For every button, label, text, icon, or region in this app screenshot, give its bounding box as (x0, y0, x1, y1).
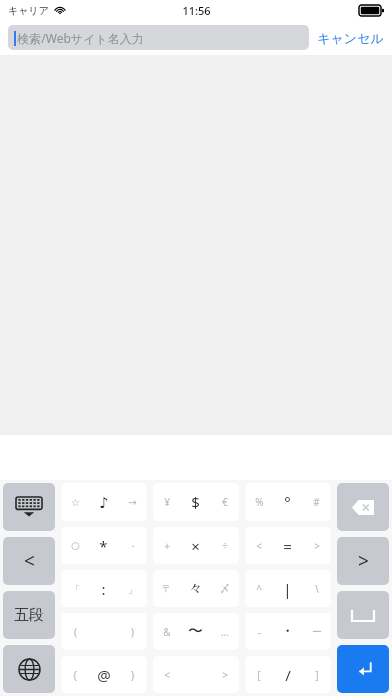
staticText: = (283, 536, 292, 556)
button[interactable]: + (153, 527, 239, 564)
button[interactable]: ☆ (61, 483, 147, 521)
staticText: % (255, 495, 264, 509)
staticText: キャリア (8, 4, 49, 17)
staticText: 「 (70, 583, 80, 596)
staticText: 〆 (220, 582, 230, 595)
staticText: / (285, 665, 291, 685)
staticText: ] (315, 668, 319, 682)
staticText: > (358, 548, 369, 574)
staticText: \ (315, 582, 319, 596)
staticText: | (283, 579, 292, 599)
staticText: 」 (128, 583, 138, 596)
button[interactable]: Hide keyboard (3, 483, 55, 531)
button[interactable]: & (153, 613, 239, 650)
staticText: ☆ (71, 497, 80, 509)
staticText: : (101, 579, 106, 599)
staticText: ) (131, 625, 134, 639)
button[interactable]: ○ (61, 527, 147, 564)
staticText: € (222, 495, 228, 509)
staticText: ♪ (99, 494, 109, 511)
button[interactable]: - (245, 613, 331, 650)
staticText: } (131, 668, 135, 682)
staticText: < (256, 539, 262, 553)
staticText: > (222, 668, 228, 682)
staticText: ・ (128, 540, 138, 553)
button[interactable]: キャンセル (317, 30, 384, 46)
button[interactable]: 〒 (153, 570, 239, 607)
staticText: - (257, 625, 261, 639)
staticText: $ (191, 492, 200, 512)
staticText: ・ (280, 622, 295, 641)
staticText: > (314, 539, 320, 553)
staticText: 検索/Webサイト名入力 (17, 30, 144, 46)
button[interactable]: { (61, 656, 147, 693)
staticText: 11:56 (182, 3, 211, 18)
button[interactable]: Space (337, 591, 389, 639)
staticText: + (164, 539, 170, 553)
staticText: # (313, 495, 320, 509)
button[interactable]: Previous (3, 537, 55, 585)
staticText: * (99, 536, 108, 556)
button[interactable]: ^ (245, 570, 331, 607)
staticText: … (221, 625, 229, 639)
button[interactable]: ¥ (153, 483, 239, 521)
staticText: 五段 (14, 606, 44, 625)
button[interactable]: < (245, 527, 331, 564)
staticText: ° (284, 492, 291, 512)
button[interactable]: [ (245, 656, 331, 693)
button[interactable]: Change language (3, 645, 55, 693)
staticText: × (191, 536, 200, 556)
staticText: [ (257, 668, 261, 682)
staticText: ^ (256, 582, 262, 596)
staticText: 〒 (162, 582, 172, 595)
staticText: < (164, 668, 170, 682)
staticText: 〜 (188, 622, 203, 641)
button[interactable]: ( (61, 613, 147, 650)
staticText: ○ (71, 540, 80, 552)
staticText: < (24, 548, 35, 574)
button[interactable]: 検索/Webサイト名入力 (8, 25, 309, 50)
button[interactable]: Godan keyboard (3, 591, 55, 639)
button[interactable]: Delete (337, 483, 389, 531)
staticText: ÷ (222, 539, 228, 553)
staticText: ¥ (164, 495, 170, 509)
button[interactable]: < (153, 656, 239, 693)
button[interactable]: Next (337, 537, 389, 585)
staticText: 々 (188, 579, 203, 598)
button[interactable]: 「 (61, 570, 147, 607)
staticText: ( (74, 625, 77, 639)
staticText: & (163, 625, 171, 639)
button[interactable]: % (245, 483, 331, 521)
button[interactable]: Return (337, 645, 389, 693)
staticText: ー (312, 625, 322, 638)
staticText: @ (97, 665, 111, 685)
staticText: → (128, 497, 137, 509)
staticText: キャンセル (317, 30, 384, 46)
staticText: { (73, 668, 77, 682)
